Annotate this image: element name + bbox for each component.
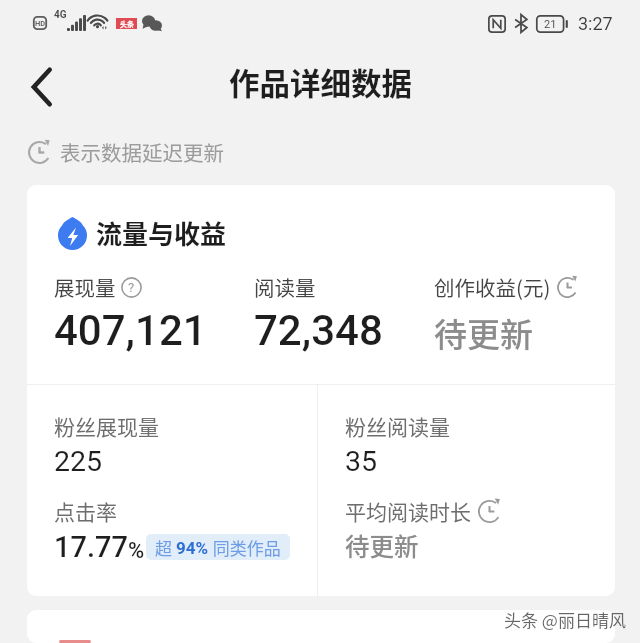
- staticText: 创作收益(元): [434, 272, 551, 302]
- staticText: 头条 @丽日晴风: [504, 607, 626, 632]
- button[interactable]: 粉丝展现量: [54, 411, 159, 478]
- button[interactable]: Back: [14, 59, 70, 115]
- staticText: 粉丝阅读量: [345, 411, 450, 441]
- other: Bluetooth: [514, 14, 528, 33]
- staticText: ?: [128, 280, 135, 295]
- staticText: 超: [155, 535, 176, 560]
- button[interactable]: 创作收益(元): [434, 272, 615, 357]
- staticText: 4G: [54, 9, 67, 21]
- staticText: 作品详细数据: [229, 60, 412, 104]
- staticText: %: [128, 538, 145, 564]
- staticText: 35: [345, 445, 378, 478]
- staticText: 展现量: [54, 272, 116, 302]
- button[interactable]: 点击率: [54, 496, 290, 564]
- staticText: 21: [544, 18, 557, 31]
- button[interactable]: 流量与收益: [58, 214, 615, 252]
- staticText: 表示数据延迟更新: [60, 137, 224, 167]
- button[interactable]: 阅读量: [254, 272, 434, 355]
- staticText: 平均阅读时长: [345, 496, 471, 526]
- staticText: 225: [54, 445, 103, 478]
- staticText: 待更新: [434, 309, 533, 357]
- staticText: 粉丝展现量: [54, 411, 159, 441]
- staticText: 同类作品: [209, 535, 281, 560]
- staticText: 17.77: [54, 530, 128, 564]
- button[interactable]: 粉丝阅读量: [345, 411, 450, 478]
- button[interactable]: 展现量: [54, 272, 254, 355]
- staticText: 点击率: [54, 496, 117, 526]
- staticText: 头条: [120, 19, 134, 29]
- staticText: 3:27: [578, 13, 613, 34]
- staticText: 流量与收益: [96, 214, 227, 252]
- staticText: 407,121: [54, 306, 207, 355]
- staticText: HD: [35, 19, 46, 28]
- staticText: 待更新: [345, 528, 419, 563]
- button[interactable]: 平均阅读时长: [345, 496, 501, 563]
- staticText: 72,348: [254, 306, 383, 355]
- staticText: 阅读量: [254, 272, 316, 302]
- staticText: 94%: [176, 538, 209, 558]
- other: NFC: [488, 15, 506, 33]
